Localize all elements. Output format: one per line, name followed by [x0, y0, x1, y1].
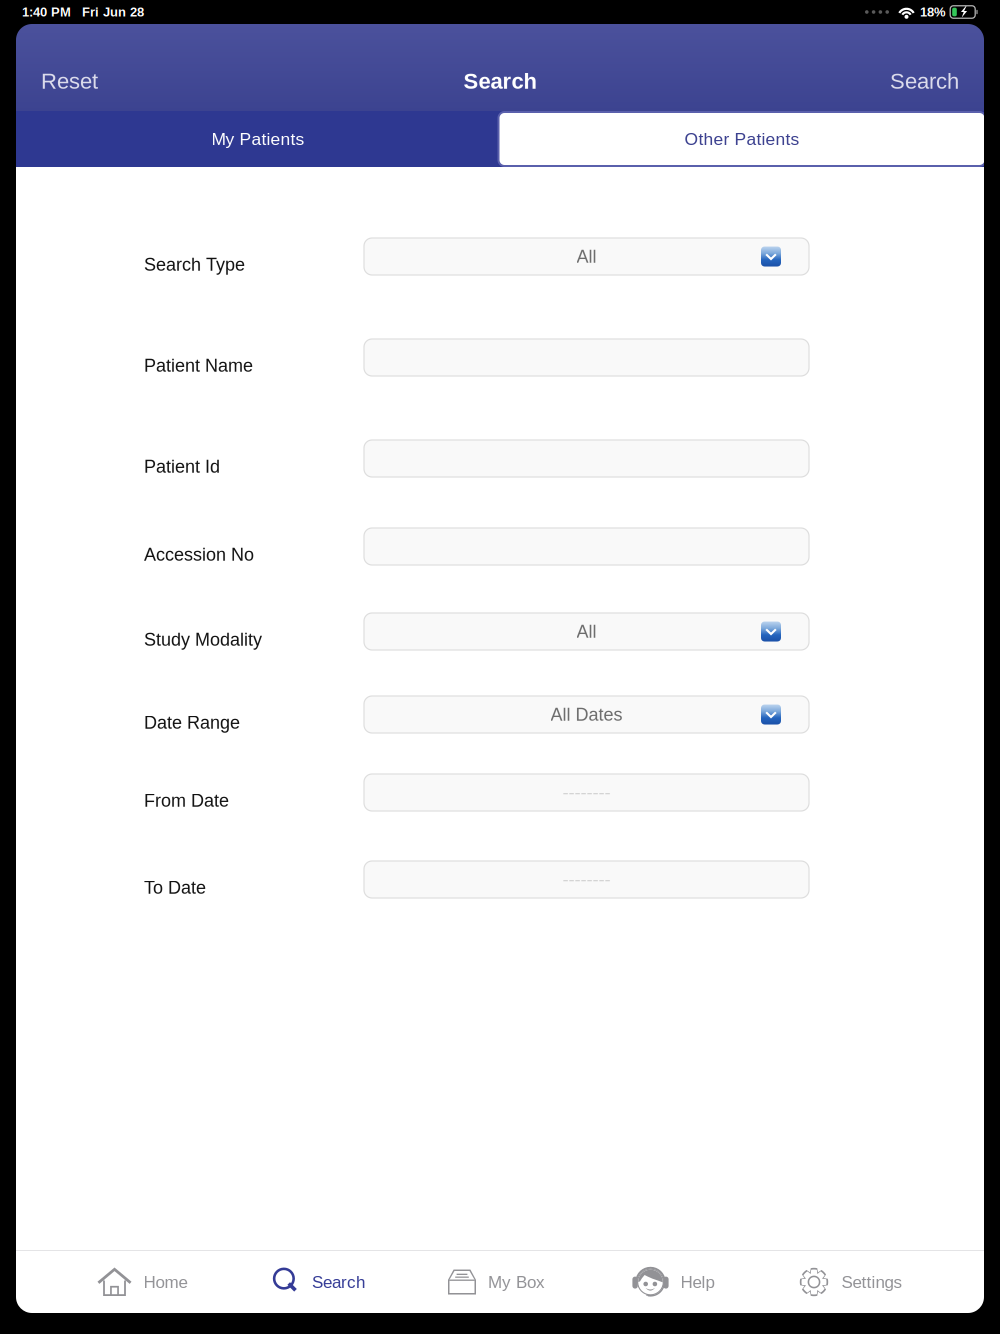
button[interactable]	[364, 528, 809, 565]
staticText: Reset	[41, 69, 98, 93]
button[interactable]: Home	[54, 1251, 231, 1313]
staticText: Help	[680, 1272, 714, 1291]
button[interactable]: All	[364, 238, 809, 275]
staticText: Accession No	[144, 544, 254, 564]
staticText: --------	[562, 782, 610, 803]
staticText: Search	[312, 1272, 365, 1291]
button[interactable]: All	[364, 613, 809, 650]
staticText: Home	[143, 1272, 187, 1291]
button[interactable]: Help	[585, 1251, 762, 1313]
button[interactable]	[364, 339, 809, 376]
staticText: All	[576, 246, 596, 266]
button[interactable]	[364, 440, 809, 477]
staticText: 1:40 PM	[22, 5, 71, 19]
button[interactable]: Settings	[762, 1251, 939, 1313]
staticText: My Box	[488, 1272, 545, 1291]
button[interactable]: My Box	[408, 1251, 585, 1313]
staticText: 18%	[920, 5, 946, 19]
button[interactable]: Reset	[41, 57, 121, 105]
button[interactable]: All Dates	[364, 696, 809, 733]
button[interactable]: --------	[364, 861, 809, 898]
staticText: From Date	[144, 790, 229, 810]
button[interactable]: Search	[231, 1251, 408, 1313]
staticText: Search	[463, 69, 536, 93]
staticText: Search	[890, 69, 959, 93]
staticText: All	[576, 621, 596, 641]
staticText: Fri Jun 28	[82, 5, 144, 19]
staticText: Search Type	[144, 254, 245, 274]
staticText: Other Patients	[684, 129, 799, 149]
button[interactable]: My Patients	[16, 111, 500, 167]
staticText: Settings	[841, 1272, 902, 1291]
staticText: My Patients	[211, 129, 304, 149]
button[interactable]: --------	[364, 774, 809, 811]
staticText: --------	[562, 869, 610, 890]
button[interactable]: Search	[869, 57, 959, 105]
staticText: All Dates	[550, 704, 622, 724]
staticText: Date Range	[144, 712, 240, 732]
staticText: Study Modality	[144, 629, 262, 649]
button[interactable]: Other Patients	[500, 111, 984, 167]
staticText: Patient Name	[144, 355, 253, 375]
staticText: To Date	[144, 877, 206, 897]
staticText: Patient Id	[144, 456, 220, 476]
